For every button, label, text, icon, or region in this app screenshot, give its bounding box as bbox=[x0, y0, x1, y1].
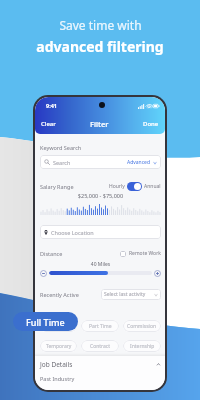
staticText: Contract bbox=[90, 343, 111, 350]
staticText: advanced filtering bbox=[36, 37, 164, 56]
staticText: Full Time bbox=[26, 316, 65, 328]
button[interactable]: Job Details bbox=[40, 360, 161, 369]
staticText: Recently Active bbox=[40, 291, 79, 298]
button[interactable]: Choose Location bbox=[40, 225, 161, 239]
staticText: Save time with bbox=[59, 17, 142, 33]
staticText: Search bbox=[53, 159, 71, 166]
button[interactable]: Temporary bbox=[40, 340, 77, 352]
staticText: Advanced bbox=[127, 159, 151, 166]
button[interactable]: Advanced bbox=[127, 159, 157, 166]
button[interactable]: Contract bbox=[81, 340, 119, 352]
staticText: Job Details bbox=[40, 360, 73, 369]
button[interactable]: Search bbox=[40, 155, 161, 169]
staticText: Commission bbox=[127, 323, 157, 330]
staticText: Select last activity bbox=[104, 291, 146, 298]
button[interactable]: Internship bbox=[123, 340, 161, 352]
staticText: Full Time bbox=[48, 323, 70, 330]
staticText: Hourly bbox=[109, 183, 125, 190]
button[interactable]: Clear bbox=[41, 120, 56, 128]
button[interactable]: Select last activity bbox=[101, 289, 161, 300]
staticText: Choose Location bbox=[51, 229, 94, 236]
button[interactable]: Full Time bbox=[13, 312, 78, 331]
staticText: Annual bbox=[144, 183, 161, 190]
staticText: Part Time bbox=[89, 323, 112, 330]
staticText: 9:41 bbox=[46, 102, 57, 109]
button[interactable]: Commission bbox=[123, 320, 161, 332]
staticText: Temporary bbox=[46, 343, 72, 350]
staticText: Filter bbox=[90, 119, 109, 129]
button[interactable]: Done bbox=[143, 120, 159, 128]
button[interactable]: Part Time bbox=[81, 320, 119, 332]
button[interactable]: Full Time bbox=[40, 320, 77, 332]
staticText: 40 Miles bbox=[40, 261, 161, 268]
staticText: Internship bbox=[130, 343, 155, 350]
staticText: Distance bbox=[40, 250, 63, 257]
staticText: Remote Work bbox=[129, 250, 161, 257]
button[interactable]: Decrease distance bbox=[40, 270, 47, 277]
button[interactable]: Remote Work bbox=[120, 250, 161, 257]
staticText: $25,000 - $75,000 bbox=[40, 192, 161, 199]
staticText: Keyword Search bbox=[40, 144, 82, 151]
button[interactable]: Increase distance bbox=[154, 270, 161, 277]
staticText: Salary Range bbox=[40, 183, 74, 190]
staticText: Past Industry bbox=[40, 375, 75, 382]
button[interactable] bbox=[127, 182, 142, 191]
